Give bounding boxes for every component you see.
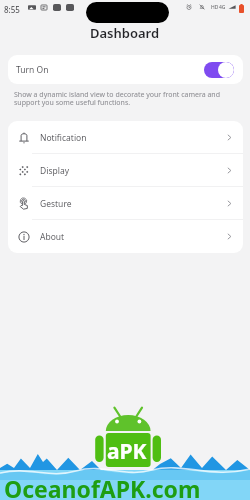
button[interactable]: Notification bbox=[8, 121, 243, 154]
button[interactable]: About bbox=[8, 220, 243, 253]
staticText: HD bbox=[211, 4, 219, 11]
staticText: 8:55 bbox=[4, 4, 20, 15]
button[interactable]: Turn On toggle bbox=[204, 62, 234, 78]
staticText: About bbox=[40, 231, 65, 243]
staticText: 4G bbox=[219, 4, 226, 11]
staticText: Notification bbox=[40, 132, 87, 144]
staticText: Show a dynamic island view to decorate y… bbox=[14, 90, 222, 107]
staticText: aPK bbox=[107, 437, 147, 466]
staticText: Gesture bbox=[40, 198, 72, 210]
staticText: Turn On bbox=[16, 64, 49, 76]
staticText: OceanofAPK.com bbox=[4, 473, 201, 500]
button[interactable]: Display bbox=[8, 154, 243, 187]
button[interactable]: Gesture bbox=[8, 187, 243, 220]
staticText: Display bbox=[40, 165, 69, 177]
button[interactable]: Turn On bbox=[8, 55, 243, 84]
staticText: Dashboard bbox=[90, 24, 160, 40]
